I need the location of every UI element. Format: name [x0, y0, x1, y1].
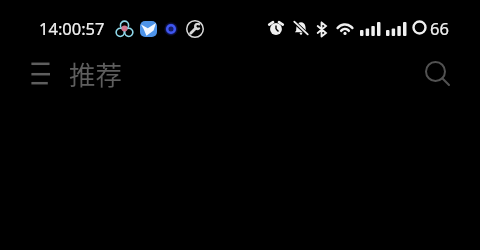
button[interactable]: Menu — [21, 53, 59, 91]
button[interactable]: Search — [418, 54, 458, 94]
staticText: 14:00:57 — [39, 17, 105, 39]
staticText: 66 — [430, 17, 449, 39]
staticText: 推荐 — [69, 54, 122, 92]
